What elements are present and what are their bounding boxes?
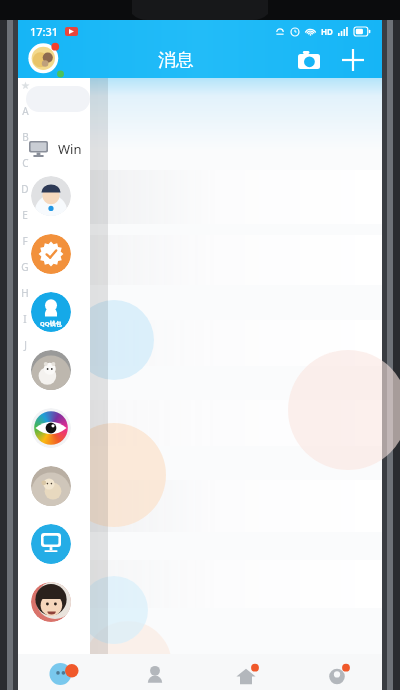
staticText: QQ钱包 xyxy=(40,320,62,328)
staticText: I xyxy=(23,312,27,326)
button[interactable]: Profile xyxy=(28,43,62,77)
staticText: A xyxy=(22,104,29,118)
button[interactable]: Add xyxy=(338,45,368,75)
button[interactable]: Discover xyxy=(200,654,291,690)
button[interactable]: Me xyxy=(291,654,382,690)
button[interactable]: Conversation xyxy=(31,582,71,622)
button[interactable]: Conversation xyxy=(31,234,71,274)
staticText: ★ xyxy=(21,80,30,92)
staticText: Win xyxy=(58,140,82,158)
staticText: B xyxy=(22,130,29,144)
staticText: 消息 xyxy=(158,49,194,72)
button[interactable]: Search xyxy=(26,86,90,112)
staticText: HD xyxy=(321,26,333,37)
button[interactable]: Conversation xyxy=(31,524,71,564)
button[interactable]: Messages xyxy=(18,654,109,690)
staticText: J xyxy=(24,338,27,352)
button[interactable]: Contacts xyxy=(109,654,200,690)
staticText: D xyxy=(21,182,29,196)
staticText: E xyxy=(22,208,28,222)
button[interactable]: Conversation xyxy=(31,350,71,390)
button[interactable]: Camera xyxy=(294,45,324,75)
staticText: H xyxy=(21,286,29,300)
button[interactable]: Win xyxy=(18,134,90,164)
staticText: C xyxy=(22,156,29,170)
staticText: G xyxy=(21,260,29,274)
button[interactable]: Conversation xyxy=(31,408,71,448)
button[interactable]: Conversation xyxy=(31,466,71,506)
button[interactable]: Conversation xyxy=(31,292,71,332)
staticText: 17:31 xyxy=(30,24,59,39)
staticText: F xyxy=(22,234,28,248)
button[interactable]: Conversation xyxy=(31,176,71,216)
